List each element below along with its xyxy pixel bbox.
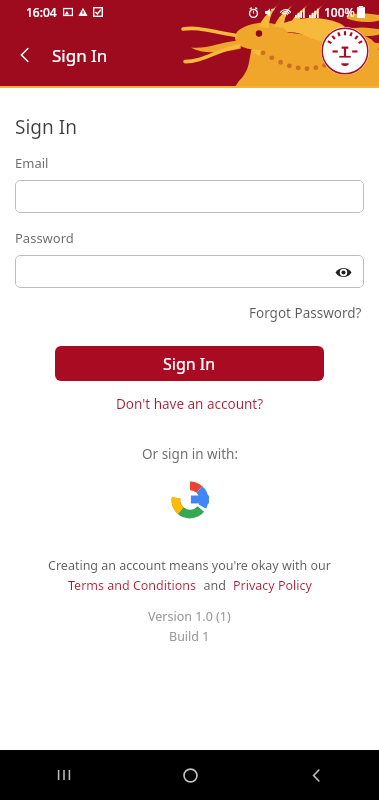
button[interactable]: Back (8, 38, 42, 72)
button[interactable]: Forgot Password? (247, 302, 364, 324)
staticText: Sign In (163, 353, 216, 375)
staticText: Build 1 (169, 628, 210, 645)
staticText: Sign In (15, 114, 77, 140)
staticText: Privacy Policy (233, 577, 312, 594)
staticText: Or sign in with: (142, 445, 238, 463)
staticText: Sign In (52, 44, 108, 67)
staticText: Terms and Conditions (68, 577, 197, 594)
staticText: 16:04 (26, 4, 57, 20)
staticText: Version 1.0 (1) (148, 608, 231, 625)
staticText: Password (15, 229, 74, 247)
button[interactable]: Sign In (55, 346, 324, 381)
staticText: and (197, 577, 233, 594)
button[interactable]: Show password (15, 255, 364, 288)
staticText: Forgot Password? (249, 304, 362, 322)
button[interactable]: Don't have an account? (0, 395, 379, 413)
staticText: 100% (324, 4, 355, 20)
staticText: Email (15, 154, 49, 172)
button[interactable]: Terms and Conditions (68, 577, 197, 594)
button[interactable]: Home (127, 750, 253, 800)
button[interactable]: Show password (332, 261, 354, 283)
button[interactable]: Back (253, 750, 379, 800)
button[interactable]: Privacy Policy (233, 577, 312, 594)
staticText: Creating an account means you're okay wi… (48, 557, 331, 574)
button[interactable]: Sign in with Google (167, 477, 213, 523)
staticText: Don't have an account? (116, 395, 264, 413)
button[interactable]: Recent apps (0, 750, 127, 800)
button[interactable] (15, 180, 364, 213)
